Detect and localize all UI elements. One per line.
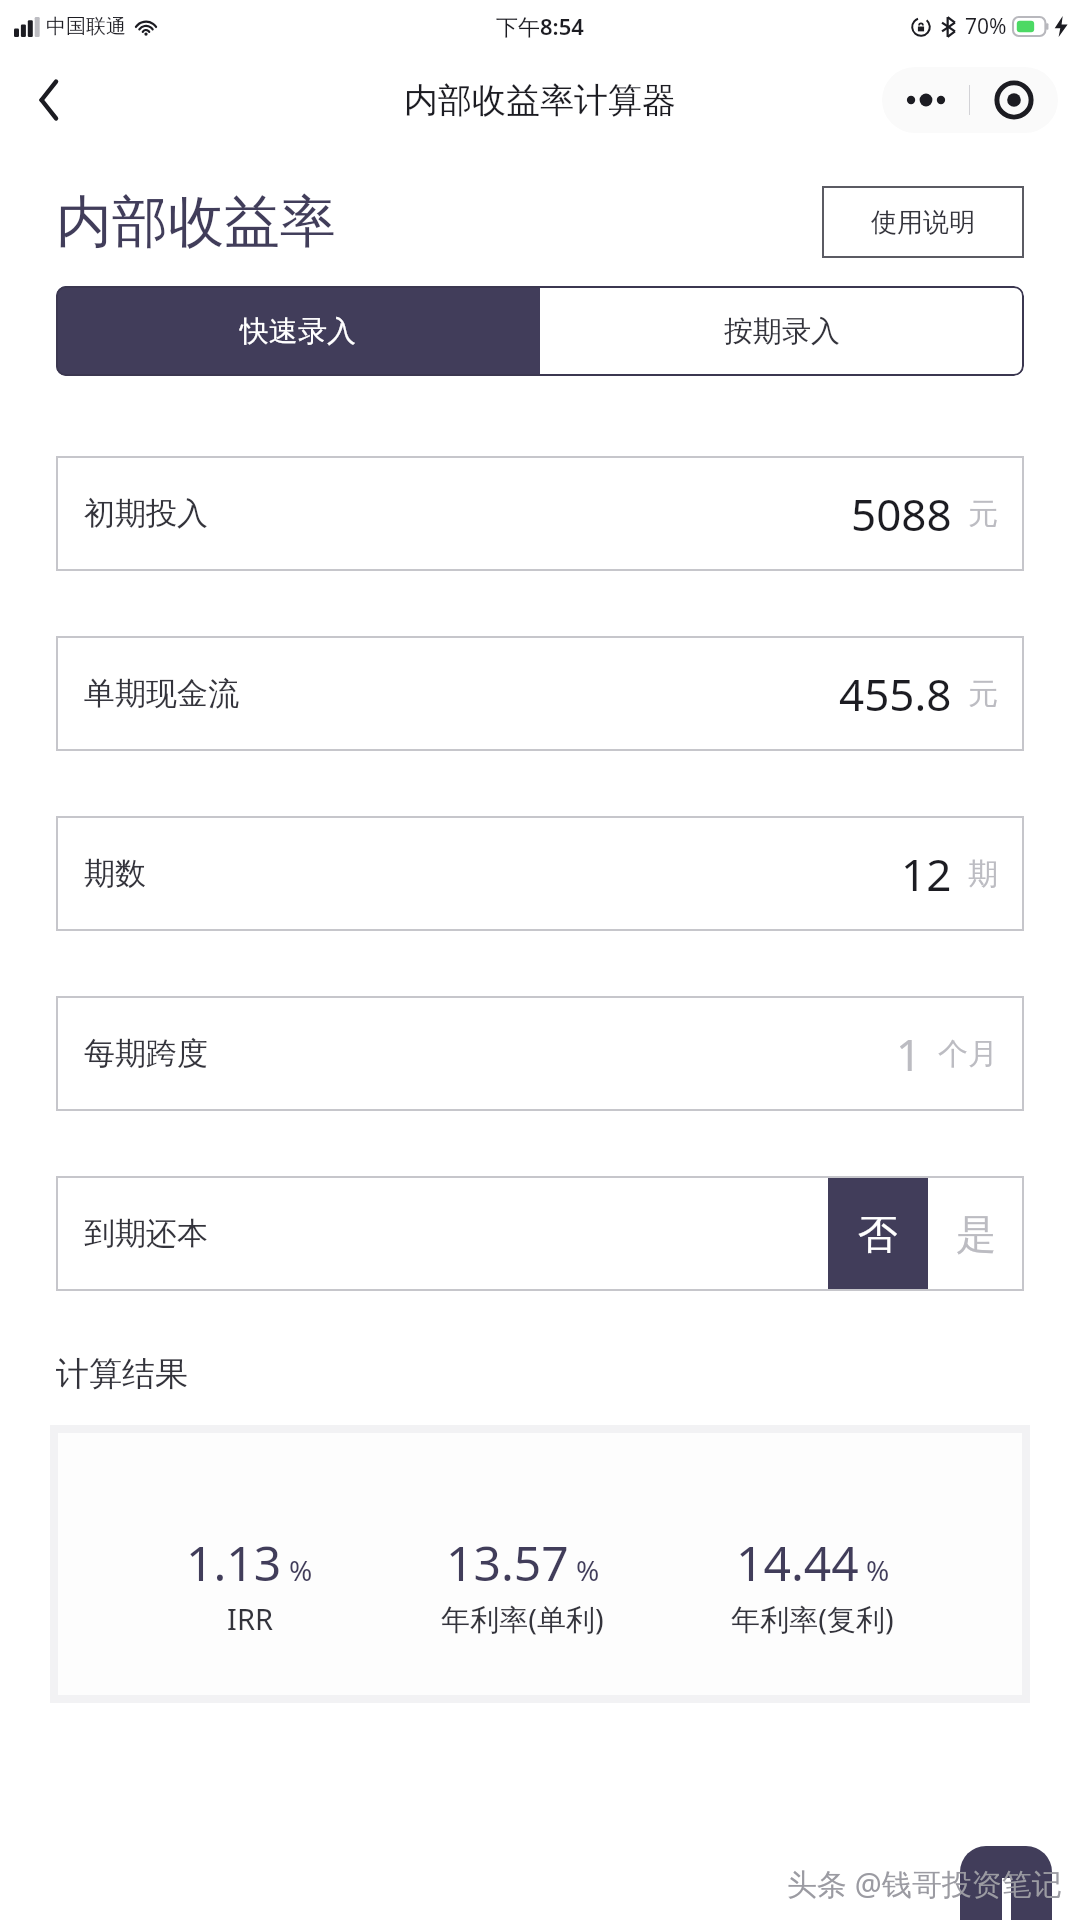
staticText: 年利率(单利) xyxy=(441,1599,604,1639)
staticText: 头条 @钱哥投资笔记 xyxy=(787,1863,1062,1904)
staticText: 13.57 xyxy=(446,1530,569,1595)
staticText: 5088 xyxy=(851,484,952,544)
staticText: 初期投入 xyxy=(84,494,208,533)
button[interactable]: Add xyxy=(960,1846,1052,1920)
button[interactable]: 到期还本 xyxy=(56,1176,828,1291)
staticText: 455.8 xyxy=(839,664,952,724)
staticText: 1.13 xyxy=(186,1530,282,1595)
staticText: 中国联通 xyxy=(46,14,126,39)
staticText: 计算结果 xyxy=(56,1353,188,1395)
staticText: 内部收益率 xyxy=(56,187,336,258)
button[interactable]: 单期现金流 xyxy=(56,636,1024,751)
button[interactable]: 快速录入 xyxy=(56,286,540,376)
button[interactable]: 1.13 xyxy=(58,1433,1022,1695)
staticText: 单期现金流 xyxy=(84,674,239,713)
button[interactable]: 初期投入 xyxy=(56,456,1024,571)
staticText: 个月 xyxy=(938,1035,998,1073)
button[interactable]: Back xyxy=(18,69,80,131)
staticText: 按期录入 xyxy=(724,313,840,350)
staticText: 年利率(复利) xyxy=(731,1599,894,1639)
staticText: 元 xyxy=(968,495,998,533)
staticText: 1 xyxy=(896,1024,922,1084)
staticText: % xyxy=(289,1551,313,1589)
button[interactable]: 使用说明 xyxy=(822,186,1024,258)
button[interactable]: 是 xyxy=(928,1176,1024,1291)
staticText: 否 xyxy=(858,1209,898,1259)
button[interactable]: 按期录入 xyxy=(540,286,1024,376)
staticText: 12 xyxy=(901,844,952,904)
button[interactable]: Close xyxy=(970,67,1058,133)
staticText: 快速录入 xyxy=(240,313,356,350)
button[interactable]: 否 xyxy=(828,1176,928,1291)
staticText: IRR xyxy=(227,1599,273,1638)
staticText: 使用说明 xyxy=(871,206,975,239)
staticText: 14.44 xyxy=(736,1530,859,1595)
staticText: 每期跨度 xyxy=(84,1034,208,1073)
staticText: 期数 xyxy=(84,854,146,893)
staticText: 元 xyxy=(968,675,998,713)
staticText: % xyxy=(866,1551,890,1589)
staticText: % xyxy=(576,1551,600,1589)
staticText: 下午8:54 xyxy=(496,11,584,41)
staticText: 是 xyxy=(956,1209,996,1259)
staticText: 到期还本 xyxy=(84,1214,208,1253)
staticText: 70% xyxy=(965,12,1007,41)
staticText: 期 xyxy=(968,855,998,893)
staticText: 内部收益率计算器 xyxy=(404,79,676,122)
button[interactable]: 期数 xyxy=(56,816,1024,931)
button[interactable]: More xyxy=(882,67,969,133)
button[interactable]: 每期跨度 xyxy=(56,996,1024,1111)
